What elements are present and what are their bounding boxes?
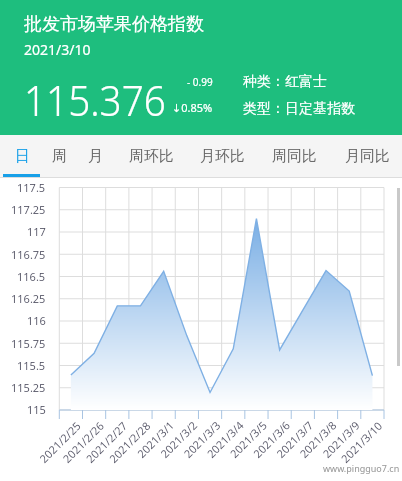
staticText: 周同比: [272, 147, 317, 166]
button[interactable]: 周环比: [120, 135, 182, 177]
staticText: 月: [88, 147, 103, 166]
staticText: www.pingguo7.cn: [323, 462, 400, 474]
staticText: ↓0.85%: [172, 100, 213, 115]
staticText: 周: [52, 147, 67, 166]
staticText: 批发市场苹果价格指数: [24, 13, 204, 36]
staticText: 月同比: [345, 147, 390, 166]
button[interactable]: 周同比: [261, 135, 327, 177]
staticText: 周环比: [129, 147, 174, 166]
button[interactable]: 月: [76, 135, 114, 177]
button[interactable]: 月同比: [334, 135, 400, 177]
staticText: 类型：日定基指数: [243, 100, 355, 118]
staticText: 115.376: [24, 71, 167, 128]
staticText: 月环比: [200, 147, 245, 166]
staticText: 种类：红富士: [243, 73, 327, 91]
button[interactable]: 日: [3, 135, 41, 177]
staticText: 2021/3/10: [24, 40, 91, 59]
button[interactable]: 周: [42, 135, 76, 177]
staticText: 日: [15, 147, 30, 166]
staticText: - 0.99: [187, 75, 213, 89]
button[interactable]: 月环比: [189, 135, 255, 177]
